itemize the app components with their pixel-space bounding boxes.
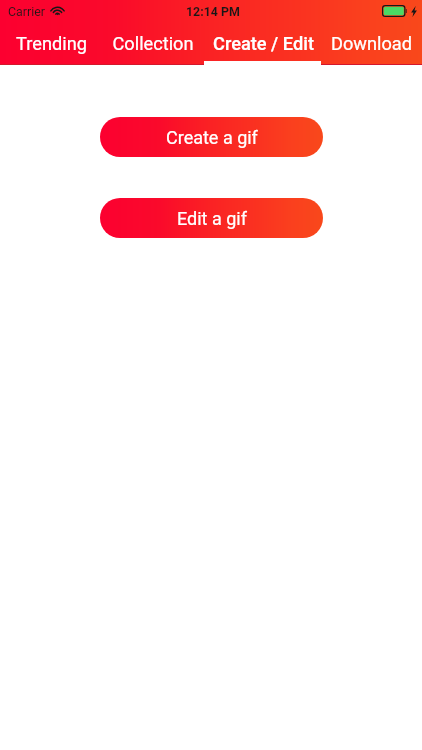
staticText: Download — [331, 33, 412, 54]
staticText: Create / Edit — [213, 33, 314, 54]
other: Wi-Fi signal — [51, 6, 64, 15]
staticText: Edit a gif — [177, 208, 247, 229]
staticText: Carrier — [8, 4, 45, 19]
staticText: 12:14 PM — [186, 4, 240, 19]
other: Charging — [411, 6, 417, 17]
button[interactable]: Edit a gif — [100, 198, 323, 238]
button[interactable]: Create / Edit — [205, 26, 322, 65]
staticText: Trending — [16, 33, 87, 54]
staticText: Create a gif — [166, 127, 258, 148]
button[interactable]: Create a gif — [100, 117, 323, 157]
other: Battery charging — [382, 5, 407, 17]
button[interactable]: Trending — [1, 26, 101, 65]
button[interactable]: Collection — [101, 26, 205, 65]
staticText: Collection — [112, 33, 194, 54]
button[interactable]: Download — [321, 26, 421, 65]
